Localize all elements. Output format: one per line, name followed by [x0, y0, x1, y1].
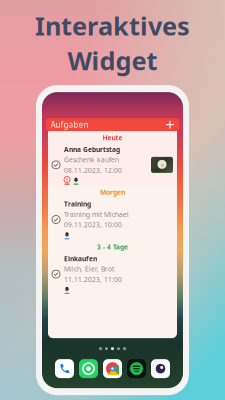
- staticText: Heute: [102, 133, 122, 142]
- button[interactable]: Training: [48, 199, 177, 240]
- button[interactable]: Telefon: [55, 359, 74, 378]
- staticText: 08.11.2023, 12:00: [64, 166, 122, 175]
- staticText: Morgen: [100, 188, 125, 197]
- staticText: Interaktives: [35, 9, 190, 42]
- staticText: Training mit Michael: [64, 210, 129, 219]
- staticText: Aufgaben: [50, 119, 88, 130]
- button[interactable]: WhatsApp: [79, 359, 98, 378]
- button[interactable]: Chrome: [103, 359, 122, 378]
- staticText: 3 - 4 Tage: [97, 242, 128, 251]
- button[interactable]: Einkaufen: [48, 253, 177, 295]
- button[interactable]: Anna Geburtstag: [48, 144, 177, 186]
- button[interactable]: Aufgabe hinzufügen: [165, 120, 174, 129]
- staticText: Einkaufen: [64, 254, 97, 263]
- button[interactable]: Kamera: [151, 359, 170, 378]
- staticText: Training: [64, 200, 91, 208]
- staticText: Geschenk kaufen: [64, 155, 119, 164]
- staticText: Anna Geburtstag: [64, 145, 120, 154]
- button[interactable]: Spotify: [127, 359, 146, 378]
- staticText: 09.11.2023, 10:00: [64, 220, 122, 229]
- staticText: 11.11.2023, 11:00: [64, 275, 122, 284]
- staticText: Widget: [67, 43, 157, 77]
- staticText: Milch, Eier, Brot: [64, 265, 114, 273]
